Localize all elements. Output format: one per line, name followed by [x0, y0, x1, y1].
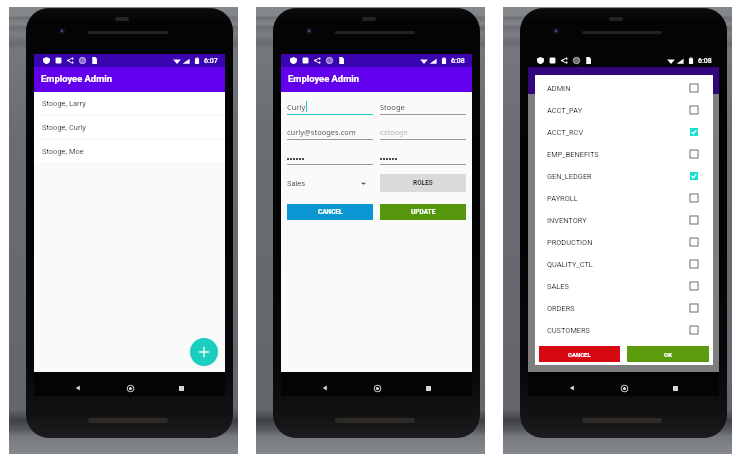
- staticText: EMP_BENEFITS: [547, 150, 599, 159]
- staticText: Stooge, Larry: [42, 99, 86, 108]
- button[interactable]: CANCEL: [287, 204, 373, 220]
- button[interactable]: Stooge, Moe: [34, 140, 225, 162]
- staticText: ACCT_PAY: [547, 106, 583, 115]
- staticText: 6:08: [698, 57, 712, 65]
- staticText: GEN_LEDGER: [547, 172, 592, 181]
- button[interactable]: Back: [70, 380, 86, 396]
- button[interactable]: curly@stooges.com: [287, 125, 373, 140]
- button[interactable]: ACCT_RCV: [535, 121, 713, 143]
- staticText: PRODUCTION: [547, 238, 593, 247]
- button[interactable]: Stooge: [380, 100, 466, 115]
- button[interactable]: Sales: [287, 174, 373, 192]
- staticText: Stooge: [380, 102, 405, 112]
- staticText: UPDATE: [411, 208, 436, 216]
- staticText: ORDERS: [547, 304, 575, 313]
- staticText: Employee Admin: [288, 73, 360, 84]
- staticText: CUSTOMERS: [547, 326, 590, 335]
- staticText: INVENTORY: [547, 216, 587, 225]
- button[interactable]: INVENTORY: [535, 209, 713, 231]
- button[interactable]: ACCT_PAY: [535, 99, 713, 121]
- button[interactable]: Recent apps: [420, 380, 436, 396]
- button[interactable]: Back: [564, 380, 580, 396]
- staticText: Sales: [287, 179, 306, 188]
- button[interactable]: [287, 150, 373, 165]
- button[interactable]: PAYROLL: [535, 187, 713, 209]
- button[interactable]: EMP_BENEFITS: [535, 143, 713, 165]
- staticText: OK: [664, 351, 672, 358]
- button[interactable]: GEN_LEDGER: [535, 165, 713, 187]
- button[interactable]: Curly: [287, 100, 373, 115]
- staticText: CANCEL: [318, 208, 343, 216]
- button[interactable]: Stooge, Curly: [34, 116, 225, 138]
- button[interactable]: ORDERS: [535, 297, 713, 319]
- staticText: cstooge: [380, 127, 408, 137]
- staticText: Employee Admin: [41, 73, 113, 84]
- staticText: Stooge, Moe: [42, 147, 84, 156]
- button[interactable]: CANCEL: [539, 346, 620, 362]
- button[interactable]: QUALITY_CTL: [535, 253, 713, 275]
- staticText: ADMIN: [547, 84, 571, 93]
- button[interactable]: cstooge: [380, 125, 466, 140]
- staticText: Stooge, Curly: [42, 123, 86, 132]
- button[interactable]: [380, 150, 466, 165]
- staticText: QUALITY_CTL: [547, 260, 593, 269]
- button[interactable]: Stooge, Larry: [34, 92, 225, 114]
- button[interactable]: Back: [317, 380, 333, 396]
- button[interactable]: PRODUCTION: [535, 231, 713, 253]
- button[interactable]: UPDATE: [380, 204, 466, 220]
- staticText: ACCT_RCV: [547, 128, 584, 137]
- staticText: 6:07: [204, 57, 218, 65]
- staticText: curly@stooges.com: [287, 127, 356, 137]
- staticText: Curly: [287, 102, 306, 112]
- button[interactable]: OK: [627, 346, 709, 362]
- button[interactable]: Home: [122, 380, 138, 396]
- button[interactable]: SALES: [535, 275, 713, 297]
- staticText: CANCEL: [568, 351, 591, 358]
- button[interactable]: Home: [369, 380, 385, 396]
- staticText: ROLES: [413, 179, 433, 187]
- button[interactable]: CUSTOMERS: [535, 319, 713, 341]
- staticText: 6:08: [451, 57, 465, 65]
- staticText: PAYROLL: [547, 194, 578, 203]
- button[interactable]: Recent apps: [173, 380, 189, 396]
- button[interactable]: Home: [616, 380, 632, 396]
- button[interactable]: ADMIN: [535, 77, 713, 99]
- button[interactable]: ROLES: [380, 174, 466, 192]
- staticText: SALES: [547, 282, 569, 291]
- button[interactable]: Recent apps: [667, 380, 683, 396]
- button[interactable]: Add employee: [190, 338, 218, 366]
